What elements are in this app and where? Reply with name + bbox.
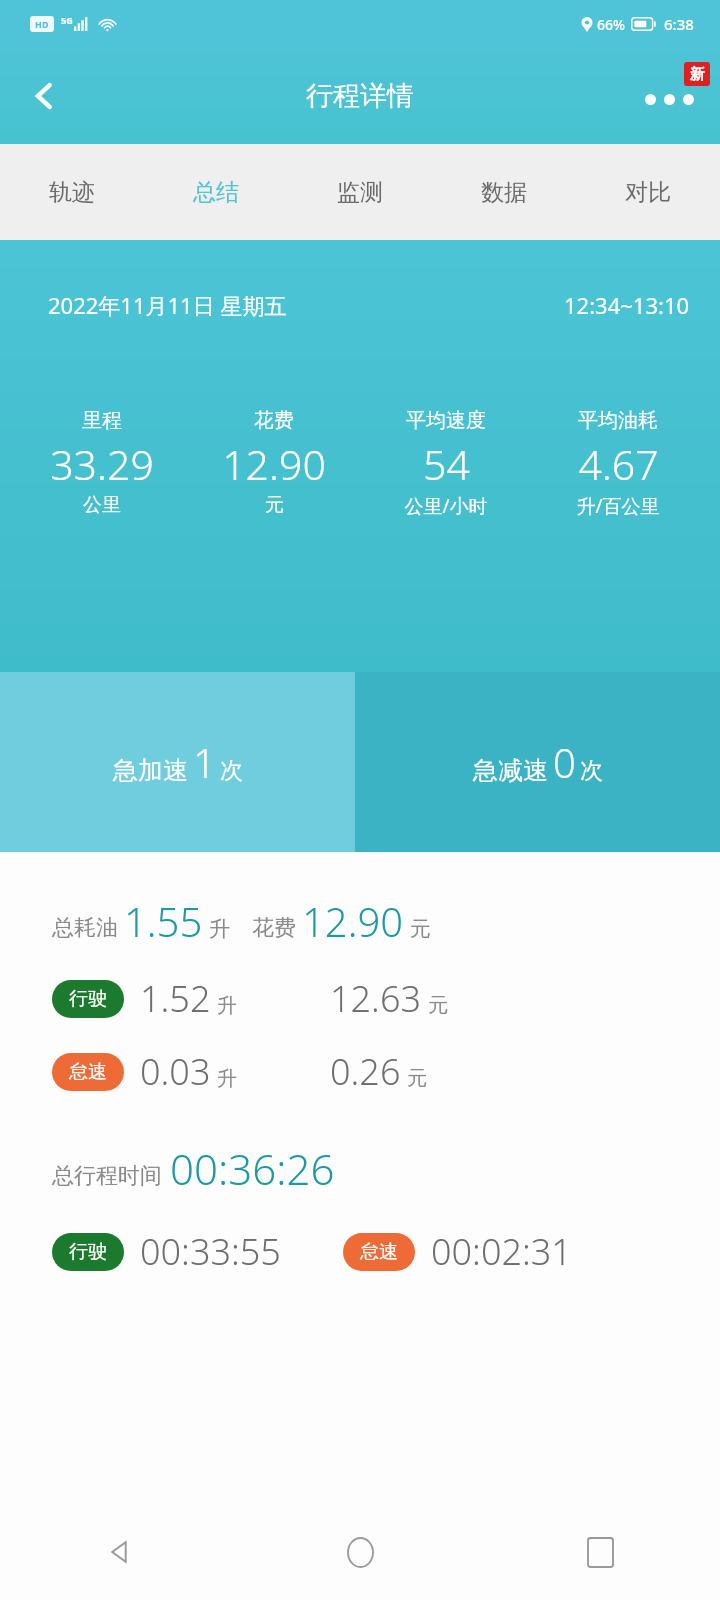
staticText: 公里 (83, 493, 121, 517)
staticText: 升 (217, 993, 237, 1018)
staticText: 12:34~13:10 (564, 290, 690, 320)
button[interactable]: 数据 (432, 144, 576, 240)
staticText: 总结 (193, 178, 239, 207)
staticText: 总耗油 (52, 914, 118, 942)
staticText: 平均速度 (406, 408, 486, 433)
staticText: 12.63 (330, 974, 422, 1023)
staticText: 行驶 (69, 987, 107, 1011)
staticText: 平均油耗 (578, 408, 658, 433)
button[interactable]: Home (240, 1504, 480, 1600)
staticText: 公里/小时 (404, 493, 488, 519)
staticText: 急加速 (113, 755, 188, 786)
staticText: 2022年11月11日 星期五 (48, 290, 287, 320)
staticText: 行驶 (69, 1240, 107, 1264)
staticText: 监测 (337, 178, 383, 207)
staticText: 0.26 (330, 1047, 401, 1096)
button[interactable]: 总结 (144, 144, 288, 240)
button[interactable]: Back (12, 64, 76, 128)
staticText: 00:02:31 (431, 1227, 572, 1276)
staticText: 00:33:55 (140, 1227, 281, 1276)
staticText: 次 (220, 756, 243, 785)
staticText: 0 (553, 735, 576, 789)
staticText: 5G (61, 14, 73, 26)
staticText: 元 (407, 1066, 427, 1091)
staticText: 急减速 (473, 755, 548, 786)
staticText: 数据 (481, 178, 527, 207)
staticText: 升 (209, 916, 230, 942)
staticText: 00:36:26 (170, 1140, 335, 1197)
staticText: 里程 (82, 408, 122, 433)
button[interactable]: 对比 (576, 144, 720, 240)
staticText: 6:38 (664, 14, 694, 34)
staticText: 1.55 (124, 894, 203, 948)
staticText: 1.52 (140, 974, 211, 1023)
staticText: 新 (690, 65, 705, 84)
staticText: 1 (193, 735, 216, 789)
staticText: 花费 (254, 408, 294, 433)
staticText: 元 (265, 493, 284, 517)
staticText: 0.03 (140, 1047, 211, 1096)
staticText: 33.29 (50, 436, 154, 492)
staticText: 怠速 (69, 1060, 107, 1084)
staticText: 升/百公里 (576, 493, 660, 519)
staticText: 升 (217, 1066, 237, 1091)
staticText: 4.67 (578, 436, 659, 492)
button[interactable]: 监测 (288, 144, 432, 240)
staticText: 对比 (625, 178, 671, 207)
staticText: 总行程时间 (52, 1162, 162, 1190)
staticText: 花费 (252, 914, 296, 942)
staticText: 次 (580, 756, 603, 785)
staticText: 12.90 (222, 436, 326, 492)
staticText: 12.90 (302, 894, 404, 948)
staticText: 怠速 (360, 1240, 398, 1264)
button[interactable]: 急减速 (355, 672, 720, 852)
staticText: HD (35, 18, 49, 30)
button[interactable]: Back (0, 1504, 240, 1600)
staticText: 轨迹 (49, 178, 95, 207)
button[interactable]: Recent apps (480, 1504, 720, 1600)
staticText: 元 (410, 916, 431, 942)
staticText: 行程详情 (306, 79, 414, 113)
button[interactable]: 轨迹 (0, 144, 144, 240)
staticText: 54 (423, 436, 470, 492)
button[interactable]: More options (626, 60, 712, 132)
staticText: 元 (428, 993, 448, 1018)
staticText: 66% (597, 15, 625, 34)
button[interactable]: 急加速 (0, 672, 355, 852)
